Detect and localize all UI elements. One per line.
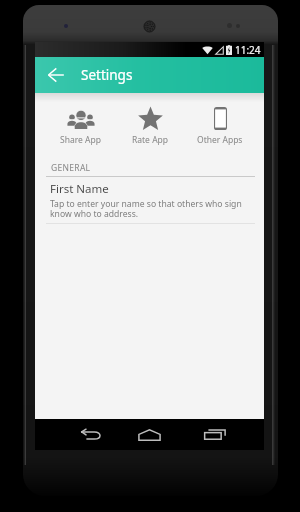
staticText: First Name [50,181,109,197]
button[interactable]: Recent apps [200,419,229,450]
staticText: Tap to enter your name so that others wh… [50,198,250,219]
button[interactable]: Share App [46,106,115,146]
staticText: Other Apps [197,134,243,146]
staticText: 11:24 [235,43,261,57]
button[interactable]: Back [75,419,104,450]
button[interactable]: Home [135,419,164,450]
staticText: GENERAL [51,162,91,174]
button[interactable]: First Name [35,177,264,223]
staticText: Share App [60,134,101,146]
button[interactable]: Other Apps [185,106,255,146]
button[interactable]: Rate App [115,106,185,146]
staticText: Settings [81,66,133,84]
staticText: Rate App [132,134,169,146]
button[interactable]: Navigate up [35,57,77,93]
